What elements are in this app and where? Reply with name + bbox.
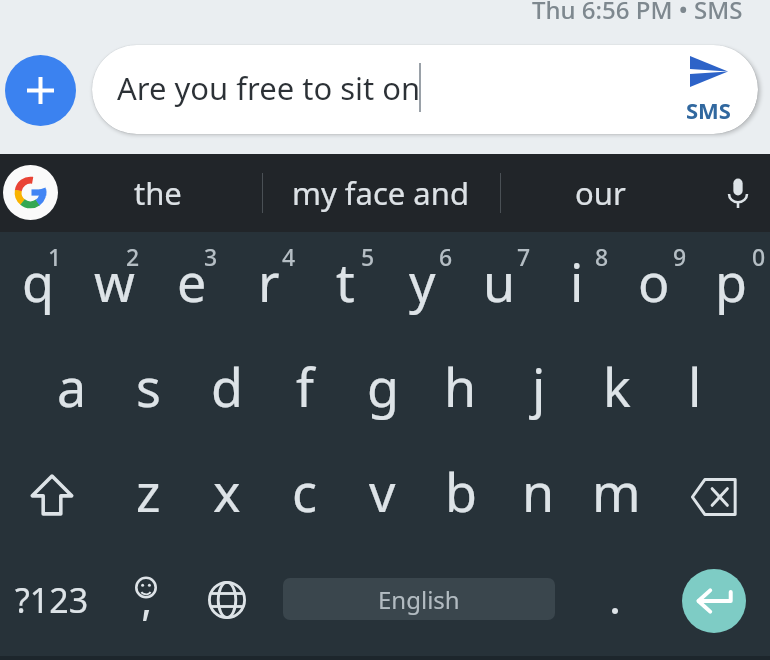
button[interactable]: c (266, 444, 343, 546)
staticText: c (292, 456, 317, 527)
staticText: SMS (686, 95, 731, 125)
button[interactable]: Send SMS (670, 50, 746, 130)
button[interactable]: m (578, 444, 655, 546)
staticText: z (136, 456, 161, 527)
staticText: u (483, 246, 516, 317)
button[interactable]: x (188, 444, 265, 546)
button[interactable]: g (344, 339, 421, 441)
button[interactable]: f (266, 339, 343, 441)
staticText: d (211, 351, 243, 422)
button[interactable]: i (538, 234, 615, 336)
staticText: h (444, 351, 477, 422)
staticText: t (336, 246, 355, 317)
staticText: i (570, 246, 584, 317)
staticText: n (522, 456, 555, 527)
staticText: 0 (752, 241, 766, 269)
button[interactable]: w (76, 234, 153, 336)
button[interactable]: o (615, 234, 692, 336)
staticText: j (532, 351, 546, 422)
staticText: o (638, 246, 670, 317)
staticText: l (688, 351, 702, 422)
button[interactable]: p (692, 234, 769, 336)
button[interactable]: Shift (0, 443, 106, 546)
button[interactable]: e (153, 234, 230, 336)
staticText: k (603, 351, 631, 422)
staticText: 4 (282, 241, 296, 269)
button[interactable]: Add attachment (5, 55, 76, 126)
staticText: my face and (292, 172, 469, 214)
staticText: the (134, 172, 182, 214)
button[interactable]: j (500, 339, 577, 441)
staticText: 5 (361, 241, 375, 269)
button[interactable]: v (344, 444, 421, 546)
staticText: v (369, 456, 396, 527)
button[interactable]: b (422, 444, 499, 546)
button[interactable]: s (110, 339, 187, 441)
staticText: p (715, 246, 747, 317)
staticText: e (177, 246, 207, 317)
staticText: 6 (439, 241, 453, 269)
button[interactable]: h (422, 339, 499, 441)
button[interactable]: Change language (187, 548, 267, 651)
button[interactable]: ?123 (0, 548, 104, 651)
button[interactable]: Are you free to sit on (92, 45, 758, 134)
button[interactable]: Backspace (656, 445, 770, 548)
staticText: x (213, 456, 241, 527)
button[interactable]: Emoji (106, 548, 186, 651)
staticText: Thu 6:56 PM • SMS (532, 0, 743, 26)
button[interactable]: Enter (682, 569, 746, 633)
button[interactable]: l (656, 339, 733, 441)
button[interactable]: k (578, 339, 655, 441)
button[interactable]: u (461, 234, 538, 336)
button[interactable]: Google Assistant (3, 165, 58, 220)
staticText: a (57, 351, 87, 422)
staticText: q (22, 246, 54, 317)
staticText: Are you free to sit on (117, 67, 421, 109)
button[interactable]: Voice input (706, 154, 770, 232)
staticText: g (367, 351, 399, 422)
staticText: m (592, 456, 641, 527)
staticText: 9 (673, 241, 687, 269)
button[interactable]: r (230, 234, 307, 336)
staticText: 7 (517, 241, 531, 269)
button[interactable]: Period (585, 548, 645, 651)
staticText: 1 (48, 241, 62, 269)
staticText: y (409, 246, 436, 317)
button[interactable]: my face and (265, 154, 495, 232)
button[interactable]: d (188, 339, 265, 441)
staticText: s (136, 351, 161, 422)
button[interactable]: z (110, 444, 187, 546)
staticText: our (575, 172, 626, 214)
staticText: English (378, 583, 460, 616)
staticText: 2 (126, 241, 140, 269)
button[interactable]: n (500, 444, 577, 546)
staticText: 3 (204, 241, 218, 269)
button[interactable]: the (98, 154, 218, 232)
staticText: w (94, 246, 135, 317)
button[interactable]: a (33, 339, 110, 441)
staticText: 8 (595, 241, 609, 269)
button[interactable]: t (307, 234, 384, 336)
button[interactable]: y (384, 234, 461, 336)
button[interactable]: English (283, 578, 555, 620)
staticText: b (445, 456, 477, 527)
button[interactable]: q (0, 234, 76, 336)
staticText: r (258, 246, 280, 317)
button[interactable]: our (540, 154, 660, 232)
staticText: f (296, 351, 314, 422)
staticText: ?123 (15, 577, 89, 623)
